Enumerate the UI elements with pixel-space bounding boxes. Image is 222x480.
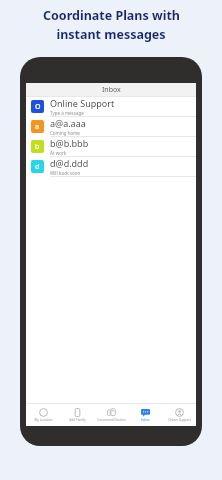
staticText: Coming home bbox=[50, 130, 80, 136]
button[interactable]: d bbox=[26, 157, 196, 177]
button[interactable]: O bbox=[26, 97, 196, 117]
staticText: Add Family bbox=[69, 418, 86, 422]
staticText: Online Support bbox=[168, 418, 191, 422]
button[interactable]: a bbox=[26, 117, 196, 137]
staticText: d bbox=[35, 162, 40, 172]
staticText: Connected Devices bbox=[97, 418, 126, 422]
staticText: My Location bbox=[34, 418, 53, 422]
button[interactable]: Add Family bbox=[60, 403, 94, 426]
button[interactable]: Inbox bbox=[128, 403, 162, 426]
staticText: O bbox=[35, 102, 41, 112]
staticText: Online Support bbox=[50, 97, 115, 109]
staticText: a@a.aaa bbox=[50, 117, 86, 129]
staticText: Inbox bbox=[141, 418, 150, 422]
staticText: b@b.bbb bbox=[50, 137, 89, 149]
button[interactable]: Connected Devices bbox=[94, 403, 128, 426]
staticText: Coordinate Plans with bbox=[43, 7, 180, 24]
staticText: Will back soon bbox=[50, 170, 81, 176]
button[interactable]: Online Support bbox=[162, 403, 196, 426]
button[interactable]: My Location bbox=[26, 403, 60, 426]
staticText: d@d.ddd bbox=[50, 157, 89, 169]
staticText: instant messages bbox=[56, 26, 166, 43]
staticText: At work bbox=[50, 150, 67, 156]
button[interactable]: b bbox=[26, 137, 196, 157]
staticText: Inbox bbox=[102, 85, 121, 95]
staticText: a bbox=[35, 122, 40, 132]
staticText: b bbox=[35, 142, 40, 152]
staticText: Type a message bbox=[50, 110, 84, 116]
